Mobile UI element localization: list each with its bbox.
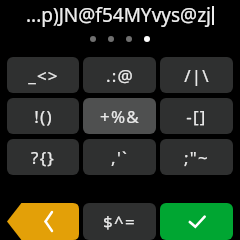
button[interactable]: ,'` xyxy=(83,139,156,175)
button[interactable]: .:@ xyxy=(83,57,156,93)
staticText: .:@ xyxy=(106,64,134,87)
button[interactable]: ;"~ xyxy=(160,139,233,175)
staticText: ;"~ xyxy=(184,146,209,169)
button[interactable]: +%& xyxy=(83,98,156,134)
staticText: ...p)JN@f54MYvys@zj xyxy=(26,2,211,28)
button[interactable]: ?{} xyxy=(7,139,79,175)
staticText: /|\ xyxy=(184,64,210,87)
staticText: -[] xyxy=(186,105,207,128)
staticText: _<> xyxy=(28,64,59,87)
button[interactable]: $^= xyxy=(83,203,156,240)
button[interactable]: ...p)JN@f54MYvys@zj xyxy=(0,0,240,30)
button[interactable]: _<> xyxy=(7,57,79,93)
button[interactable]: !() xyxy=(7,98,79,134)
staticText: !() xyxy=(34,105,53,128)
staticText: $^= xyxy=(103,210,136,233)
staticText: ?{} xyxy=(31,146,55,169)
button[interactable]: Backspace xyxy=(7,203,79,240)
button[interactable]: -[] xyxy=(160,98,233,134)
staticText: +%& xyxy=(100,105,140,128)
staticText: ,'` xyxy=(111,146,128,169)
button[interactable]: /|\ xyxy=(160,57,233,93)
button[interactable]: Enter xyxy=(160,203,233,240)
